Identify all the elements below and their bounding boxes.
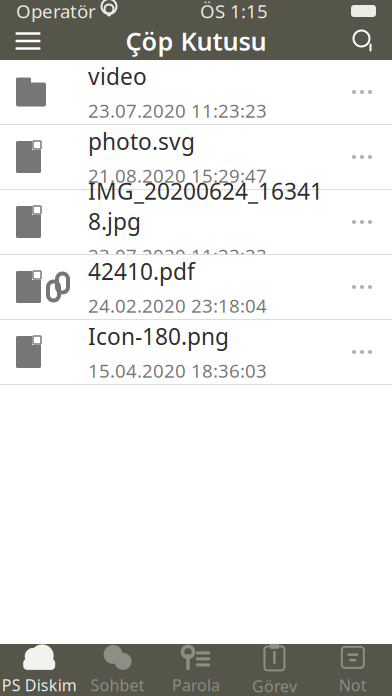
button[interactable]: video bbox=[0, 60, 392, 125]
button[interactable]: More options bbox=[332, 192, 392, 252]
staticText: Icon-180.png bbox=[88, 321, 229, 351]
button[interactable]: 42410.pdf bbox=[0, 255, 392, 320]
staticText: Operatör bbox=[16, 0, 96, 23]
button[interactable]: More options bbox=[332, 322, 392, 382]
button[interactable]: Search bbox=[336, 22, 392, 60]
button[interactable]: Icon-180.png bbox=[0, 320, 392, 385]
button[interactable]: More options bbox=[332, 127, 392, 187]
staticText: IMG_20200624_163418.jpg bbox=[88, 176, 323, 236]
staticText: Parola bbox=[172, 674, 220, 696]
staticText: photo.svg bbox=[88, 126, 195, 156]
button[interactable]: Sohbet bbox=[78, 644, 157, 696]
staticText: video bbox=[88, 61, 147, 91]
button[interactable]: Görev bbox=[235, 644, 314, 696]
staticText: ÖS 1:15 bbox=[200, 0, 268, 23]
button[interactable]: More options bbox=[332, 257, 392, 317]
staticText: PS Diskim bbox=[2, 674, 77, 696]
button[interactable]: More options bbox=[332, 62, 392, 122]
staticText: Sohbet bbox=[91, 674, 145, 696]
button[interactable]: PS Diskim bbox=[0, 644, 78, 696]
staticText: Görev bbox=[252, 675, 297, 696]
staticText: 23.07.2020 11:23:23 bbox=[88, 243, 267, 268]
staticText: 24.02.2020 23:18:04 bbox=[88, 293, 267, 318]
staticText: 23.07.2020 11:23:23 bbox=[88, 98, 267, 123]
button[interactable]: Menu bbox=[0, 22, 56, 60]
staticText: 21.08.2020 15:29:47 bbox=[88, 163, 267, 188]
button[interactable]: Parola bbox=[157, 644, 235, 696]
button[interactable]: IMG_20200624_163418.jpg bbox=[0, 190, 392, 255]
button[interactable]: Not bbox=[314, 644, 392, 696]
staticText: 15.04.2020 18:36:03 bbox=[88, 358, 267, 383]
staticText: 42410.pdf bbox=[88, 256, 195, 286]
staticText: Not bbox=[339, 674, 367, 696]
staticText: Çöp Kutusu bbox=[125, 24, 266, 58]
button[interactable]: photo.svg bbox=[0, 125, 392, 190]
